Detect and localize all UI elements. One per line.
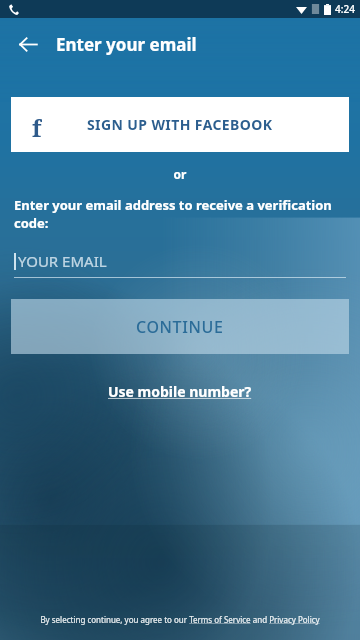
button[interactable]: Use mobile number? <box>102 380 258 403</box>
staticText: or <box>0 166 360 182</box>
button[interactable]: By selecting continue, you agree to our … <box>40 614 320 625</box>
staticText: 4:24 <box>335 2 355 16</box>
staticText: f <box>32 112 42 138</box>
button[interactable]: YOUR EMAIL <box>14 244 346 278</box>
staticText: Use mobile number? <box>108 382 252 401</box>
staticText: Enter your email <box>56 33 197 56</box>
button[interactable]: CONTINUE <box>11 299 349 354</box>
staticText: SIGN UP WITH FACEBOOK <box>87 115 273 134</box>
staticText: CONTINUE <box>136 316 224 338</box>
staticText: Enter your email address to receive a ve… <box>14 196 346 232</box>
button[interactable]: Back <box>8 24 48 64</box>
staticText: YOUR EMAIL <box>18 251 107 271</box>
button[interactable]: f <box>11 97 349 152</box>
